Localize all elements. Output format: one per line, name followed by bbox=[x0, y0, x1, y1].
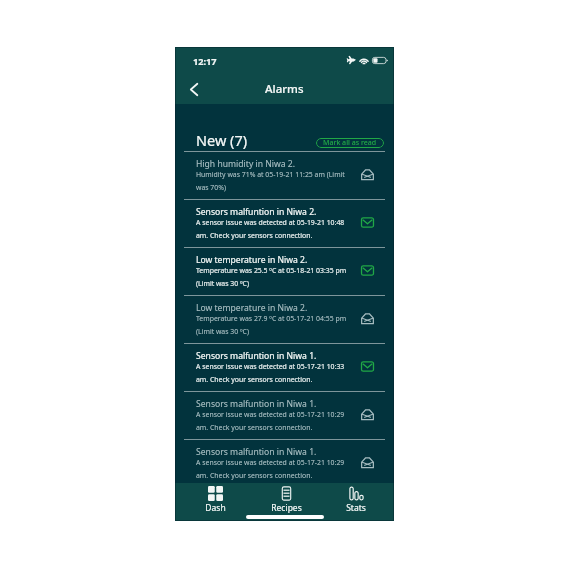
button[interactable]: Sensors malfuntion in Niwa 2. bbox=[175, 200, 394, 247]
button[interactable]: High humidity in Niwa 2. bbox=[175, 152, 394, 199]
button[interactable]: Recipes bbox=[262, 483, 310, 513]
button[interactable]: Mark all as read bbox=[316, 138, 384, 148]
button[interactable]: Sensors malfuntion in Niwa 1. bbox=[175, 440, 394, 484]
button[interactable]: Dash bbox=[191, 483, 239, 513]
staticText: Low temperature in Niwa 2. bbox=[196, 302, 308, 314]
staticText: High humidity in Niwa 2. bbox=[196, 158, 296, 170]
staticText: Sensors malfuntion in Niwa 2. bbox=[196, 206, 317, 218]
staticText: A sensor issue was detected at 05-19-21 … bbox=[196, 218, 348, 240]
staticText: Sensors malfuntion in Niwa 1. bbox=[196, 446, 317, 458]
staticText: New (7) bbox=[196, 130, 248, 150]
button[interactable]: Low temperature in Niwa 2. bbox=[175, 248, 394, 295]
staticText: Alarms bbox=[265, 81, 304, 97]
staticText: Temperature was 25.5 ºC at 05-18-21 03:3… bbox=[196, 266, 348, 288]
staticText: Sensors malfuntion in Niwa 1. bbox=[196, 350, 317, 362]
staticText: Recipes bbox=[271, 502, 302, 513]
staticText: Sensors malfuntion in Niwa 1. bbox=[196, 398, 317, 410]
button[interactable]: Sensors malfuntion in Niwa 1. bbox=[175, 344, 394, 391]
staticText: Dash bbox=[205, 502, 226, 513]
staticText: A sensor issue was detected at 05-17-21 … bbox=[196, 458, 348, 480]
button[interactable]: Stats bbox=[332, 483, 380, 513]
staticText: Humidity was 71% at 05-19-21 11:25 am (L… bbox=[196, 170, 348, 192]
button[interactable]: Sensors malfuntion in Niwa 1. bbox=[175, 392, 394, 439]
staticText: Mark all as read bbox=[323, 138, 377, 148]
staticText: Temperature was 27.9 ºC at 05-17-21 04:5… bbox=[196, 314, 348, 336]
staticText: A sensor issue was detected at 05-17-21 … bbox=[196, 410, 348, 432]
staticText: Stats bbox=[346, 502, 366, 513]
button[interactable]: Low temperature in Niwa 2. bbox=[175, 296, 394, 343]
staticText: A sensor issue was detected at 05-17-21 … bbox=[196, 362, 348, 384]
staticText: Low temperature in Niwa 2. bbox=[196, 254, 308, 266]
staticText: 12:17 bbox=[193, 55, 217, 68]
button[interactable]: Back bbox=[183, 79, 205, 101]
